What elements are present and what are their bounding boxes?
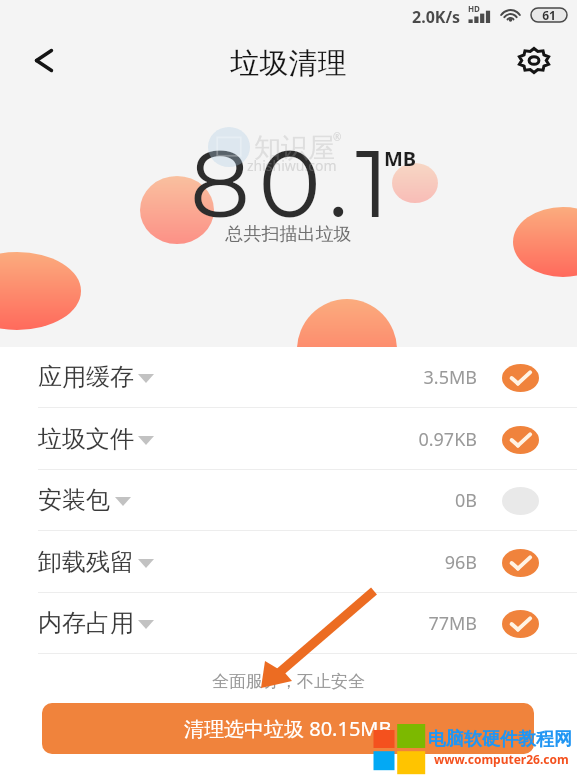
staticText: 垃圾文件 bbox=[38, 424, 134, 454]
button[interactable]: 垃圾文件 bbox=[0, 409, 577, 470]
staticText: zhishiwu.com bbox=[247, 156, 337, 175]
staticText: 应用缓存 bbox=[38, 362, 134, 392]
staticText: 总共扫描出垃圾 bbox=[0, 223, 577, 246]
staticText: 80.1 bbox=[190, 126, 398, 241]
staticText: ® bbox=[333, 130, 342, 144]
staticText: 知识屋 bbox=[254, 131, 335, 165]
button[interactable]: Settings bbox=[512, 38, 556, 82]
button[interactable]: Back bbox=[22, 38, 66, 82]
button[interactable]: 卸载残留 bbox=[0, 532, 577, 593]
staticText: 垃圾清理 bbox=[0, 45, 577, 82]
staticText: 电脑软硬件教程网 bbox=[428, 728, 572, 751]
button[interactable]: 应用缓存 bbox=[0, 347, 577, 408]
staticText: 0B bbox=[0, 488, 477, 513]
staticText: 安装包 bbox=[38, 485, 110, 515]
staticText: 内存占用 bbox=[38, 608, 134, 638]
staticText: 清理选中垃圾 80.15MB bbox=[184, 715, 392, 742]
staticText: 0.97KB bbox=[0, 427, 477, 452]
button[interactable]: 清理选中垃圾 80.15MB bbox=[42, 703, 534, 754]
staticText: 2.0K/s bbox=[412, 6, 461, 28]
staticText: HD bbox=[468, 3, 480, 14]
staticText: MB bbox=[384, 145, 417, 172]
staticText: 77MB bbox=[0, 611, 477, 636]
staticText: www.computer26.com bbox=[434, 751, 569, 767]
button[interactable]: 安装包 bbox=[0, 470, 577, 531]
staticText: 卸载残留 bbox=[38, 547, 134, 577]
staticText: 3.5MB bbox=[0, 365, 477, 390]
staticText: 61 bbox=[531, 7, 567, 21]
staticText: 全面服务，不止安全 bbox=[0, 671, 577, 692]
staticText: 96B bbox=[0, 550, 477, 575]
button[interactable]: 内存占用 bbox=[0, 593, 577, 654]
